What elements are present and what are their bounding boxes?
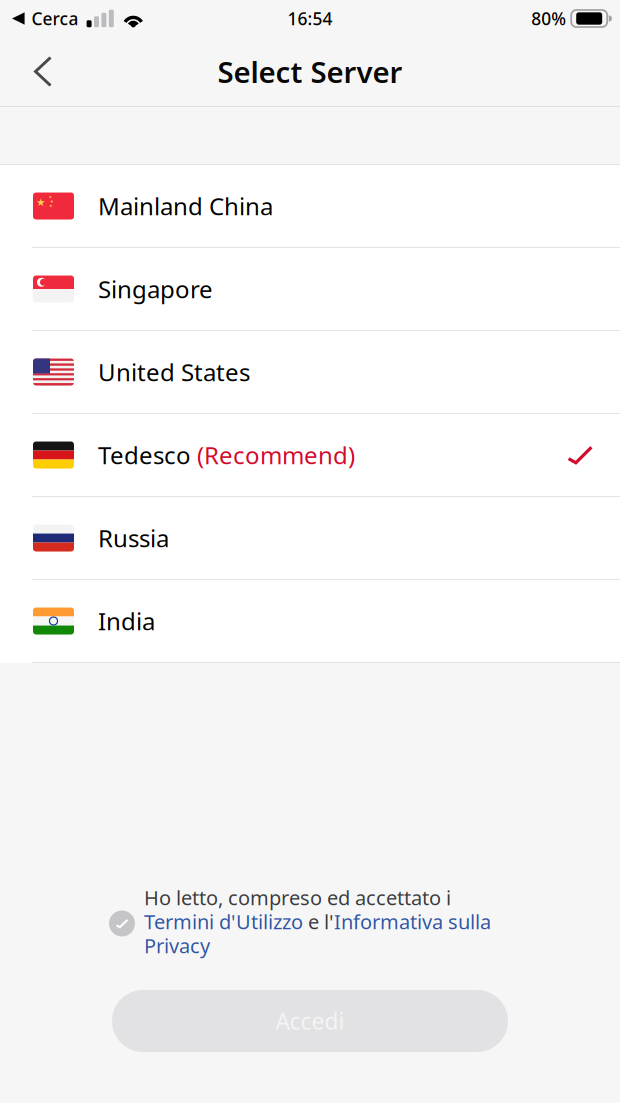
button[interactable]: Privacy bbox=[144, 933, 210, 957]
staticText: Termini d'Utilizzo bbox=[144, 908, 303, 935]
staticText: India bbox=[98, 605, 155, 637]
staticText: Cerca bbox=[32, 7, 79, 30]
button[interactable]: United States bbox=[0, 331, 620, 414]
button[interactable]: Accept terms and privacy policy bbox=[109, 910, 135, 936]
button[interactable]: Tedesco bbox=[0, 414, 620, 497]
staticText: Select Server bbox=[217, 52, 402, 91]
staticText: 16:54 bbox=[287, 7, 332, 30]
button[interactable]: Singapore bbox=[0, 248, 620, 331]
staticText: e l' bbox=[303, 908, 334, 935]
staticText: Informativa sulla bbox=[334, 908, 491, 935]
button[interactable]: Back bbox=[0, 44, 72, 99]
staticText: Accedi bbox=[275, 1006, 344, 1036]
staticText: Singapore bbox=[98, 273, 213, 305]
staticText: ★ bbox=[36, 196, 46, 208]
button[interactable]: India bbox=[0, 580, 620, 663]
staticText: 80% bbox=[531, 7, 566, 30]
staticText: Russia bbox=[98, 522, 169, 554]
staticText: United States bbox=[98, 356, 250, 388]
staticText: Mainland China bbox=[98, 190, 273, 222]
staticText: Tedesco bbox=[98, 439, 191, 471]
staticText: ★ bbox=[48, 194, 52, 199]
staticText: Privacy bbox=[144, 932, 210, 959]
staticText: ★ bbox=[49, 204, 53, 208]
button[interactable]: Informativa sulla bbox=[334, 908, 491, 935]
staticText: (Recommend) bbox=[197, 439, 355, 471]
staticText: ★ bbox=[50, 199, 54, 203]
staticText: Ho letto, compreso ed accettato i bbox=[144, 884, 451, 911]
button[interactable]: Russia bbox=[0, 497, 620, 580]
button[interactable]: ★ bbox=[0, 165, 620, 248]
button[interactable]: Termini d'Utilizzo bbox=[144, 908, 303, 935]
button[interactable]: Accedi bbox=[112, 990, 508, 1052]
